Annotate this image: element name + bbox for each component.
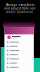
staticText: simple dashboard. [6, 10, 34, 14]
staticText: and project from one [4, 7, 36, 10]
staticText: Manage every client [5, 3, 34, 7]
